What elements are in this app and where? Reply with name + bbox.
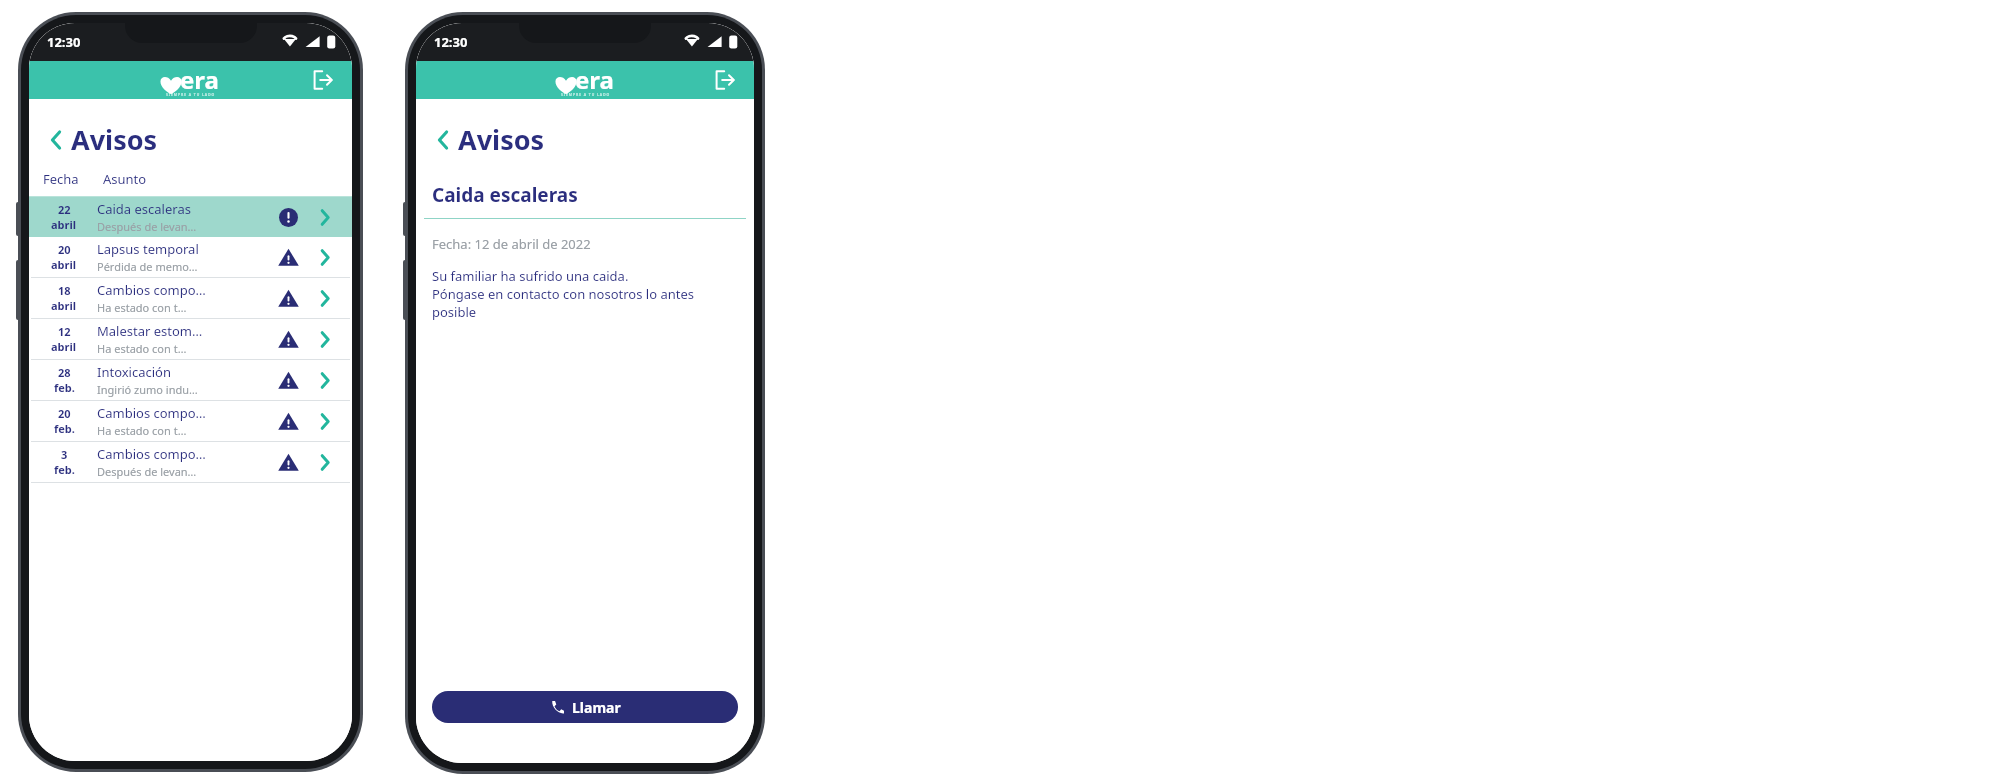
button[interactable]: 12: [29, 319, 352, 359]
staticText: Cambios compo…: [97, 281, 206, 299]
staticText: Cambios compo…: [97, 404, 206, 422]
button[interactable]: 3: [29, 442, 352, 482]
staticText: Intoxicación: [97, 363, 171, 381]
staticText: Llamar: [572, 698, 621, 717]
button[interactable]: 20: [29, 401, 352, 441]
staticText: S I E M P R E A T U L A D O: [166, 92, 215, 97]
staticText: 20: [58, 406, 71, 421]
staticText: Caida escaleras: [97, 200, 191, 218]
button[interactable]: Atrás: [430, 127, 456, 153]
staticText: feb.: [54, 421, 75, 436]
staticText: S I E M P R E A T U L A D O: [561, 92, 610, 97]
button[interactable]: Cerrar sesión: [710, 65, 740, 95]
button[interactable]: Cerrar sesión: [308, 65, 338, 95]
button[interactable]: Ver detalle: [308, 445, 342, 479]
staticText: abril: [51, 298, 77, 313]
staticText: Después de levan…: [97, 219, 197, 234]
staticText: Avisos: [458, 121, 545, 158]
staticText: Fecha: [43, 170, 99, 188]
button[interactable]: Ver detalle: [308, 281, 342, 315]
button[interactable]: Ver detalle: [308, 240, 342, 274]
staticText: Su familiar ha sufrido una caida. Póngas…: [432, 267, 695, 321]
staticText: Cambios compo…: [97, 445, 206, 463]
staticText: Fecha: 12 de abril de 2022: [432, 235, 591, 253]
staticText: era: [180, 63, 219, 96]
staticText: feb.: [54, 380, 75, 395]
staticText: feb.: [54, 462, 75, 477]
staticText: 12:30: [47, 33, 81, 51]
button[interactable]: Ver detalle: [308, 200, 342, 234]
button[interactable]: Ver detalle: [308, 404, 342, 438]
staticText: 20: [58, 242, 71, 257]
staticText: Ha estado con t…: [97, 423, 187, 438]
button[interactable]: 18: [29, 278, 352, 318]
staticText: Avisos: [71, 121, 158, 158]
staticText: Asunto: [103, 170, 147, 188]
staticText: 18: [58, 283, 71, 298]
staticText: abril: [51, 339, 77, 354]
button[interactable]: Atrás: [43, 127, 69, 153]
staticText: abril: [51, 217, 77, 232]
staticText: Ha estado con t…: [97, 341, 187, 356]
staticText: abril: [51, 257, 77, 272]
staticText: 3: [61, 447, 68, 462]
staticText: Pérdida de memo…: [97, 259, 198, 274]
button[interactable]: 28: [29, 360, 352, 400]
staticText: era: [575, 63, 614, 96]
staticText: Caida escaleras: [432, 182, 578, 208]
staticText: Ingirió zumo indu…: [97, 382, 198, 397]
staticText: 28: [58, 365, 71, 380]
staticText: Malestar estom…: [97, 322, 203, 340]
button[interactable]: Ver detalle: [308, 363, 342, 397]
staticText: 12:30: [434, 33, 468, 51]
staticText: 22: [58, 202, 71, 217]
button[interactable]: Llamar: [432, 691, 738, 723]
staticText: 12: [58, 324, 71, 339]
staticText: Ha estado con t…: [97, 300, 187, 315]
button[interactable]: Ver detalle: [308, 322, 342, 356]
button[interactable]: 20: [29, 237, 352, 277]
button[interactable]: 22: [29, 197, 352, 237]
staticText: Después de levan…: [97, 464, 197, 479]
staticText: Lapsus temporal: [97, 240, 199, 258]
